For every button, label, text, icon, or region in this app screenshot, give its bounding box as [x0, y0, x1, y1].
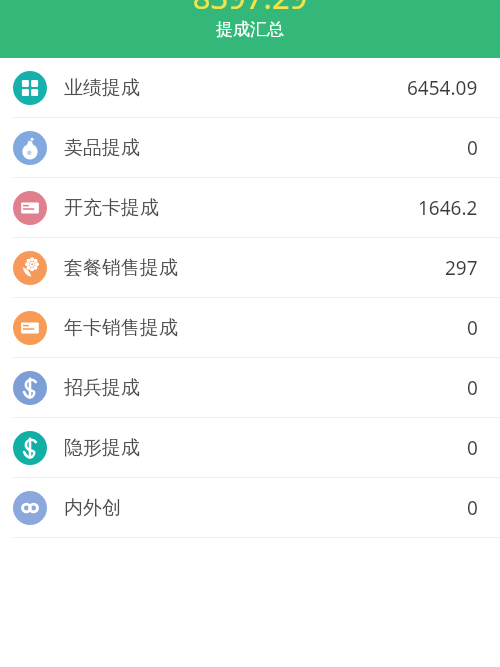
- other: 隐形提成: [13, 431, 47, 465]
- staticText: 开充卡提成: [64, 196, 159, 220]
- staticText: 套餐销售提成: [64, 256, 178, 280]
- staticText: 0: [467, 435, 478, 461]
- button[interactable]: 招兵提成: [0, 358, 500, 418]
- staticText: 0: [467, 135, 478, 161]
- staticText: 招兵提成: [64, 376, 140, 400]
- staticText: 8397.29: [0, 0, 500, 18]
- button[interactable]: 业绩提成: [0, 58, 500, 118]
- other: 套餐销售提成: [13, 251, 47, 285]
- button[interactable]: 内外创: [0, 478, 500, 538]
- staticText: 年卡销售提成: [64, 316, 178, 340]
- staticText: 业绩提成: [64, 76, 140, 100]
- staticText: 隐形提成: [64, 436, 140, 460]
- staticText: 297: [445, 255, 478, 281]
- button[interactable]: 隐形提成: [0, 418, 500, 478]
- button[interactable]: 开充卡提成: [0, 178, 500, 238]
- staticText: 内外创: [64, 496, 121, 520]
- other: 内外创: [13, 491, 47, 525]
- button[interactable]: 卖品提成: [0, 118, 500, 178]
- other: 卖品提成: [13, 131, 47, 165]
- staticText: 0: [467, 495, 478, 521]
- button[interactable]: 套餐销售提成: [0, 238, 500, 298]
- other: 年卡销售提成: [13, 311, 47, 345]
- staticText: 1646.2: [418, 195, 478, 221]
- other: 招兵提成: [13, 371, 47, 405]
- staticText: 提成汇总: [0, 19, 500, 40]
- other: 业绩提成: [13, 71, 47, 105]
- staticText: 6454.09: [407, 75, 478, 101]
- staticText: 0: [467, 315, 478, 341]
- button[interactable]: 年卡销售提成: [0, 298, 500, 358]
- other: 开充卡提成: [13, 191, 47, 225]
- staticText: 卖品提成: [64, 136, 140, 160]
- staticText: 0: [467, 375, 478, 401]
